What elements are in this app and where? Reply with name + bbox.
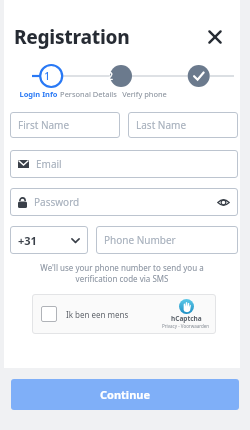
button[interactable]: Continue	[11, 379, 239, 410]
staticText: 1	[44, 69, 50, 83]
staticText: 2	[107, 69, 113, 83]
button[interactable]: Close	[200, 22, 230, 52]
staticText: Login Info	[19, 89, 58, 99]
button[interactable]: I am human checkbox	[41, 306, 57, 322]
staticText: Last Name	[136, 118, 187, 132]
staticText: Phone Number	[104, 233, 176, 247]
staticText: Continue	[100, 387, 151, 402]
button[interactable]: +31	[10, 226, 88, 254]
button[interactable]: Email	[10, 150, 238, 178]
staticText: We'll use your phone number to send you …	[20, 262, 224, 284]
staticText: Email	[36, 157, 62, 171]
staticText: +31	[18, 233, 37, 248]
staticText: Personal Details	[60, 89, 117, 99]
button[interactable]: Show password	[216, 195, 230, 209]
button[interactable]: Last Name	[128, 112, 238, 138]
staticText: Password	[34, 195, 80, 209]
staticText: hCaptcha	[171, 314, 202, 323]
staticText: Ik ben een mens	[66, 309, 129, 320]
button[interactable]: Phone Number	[96, 226, 238, 254]
button[interactable]: Password	[10, 188, 238, 216]
staticText: Privacy - Voorwaarden	[162, 323, 210, 329]
staticText: First Name	[18, 118, 70, 132]
button[interactable]: First Name	[10, 112, 120, 138]
staticText: Registration	[14, 24, 130, 50]
staticText: Verify phone	[122, 89, 167, 99]
